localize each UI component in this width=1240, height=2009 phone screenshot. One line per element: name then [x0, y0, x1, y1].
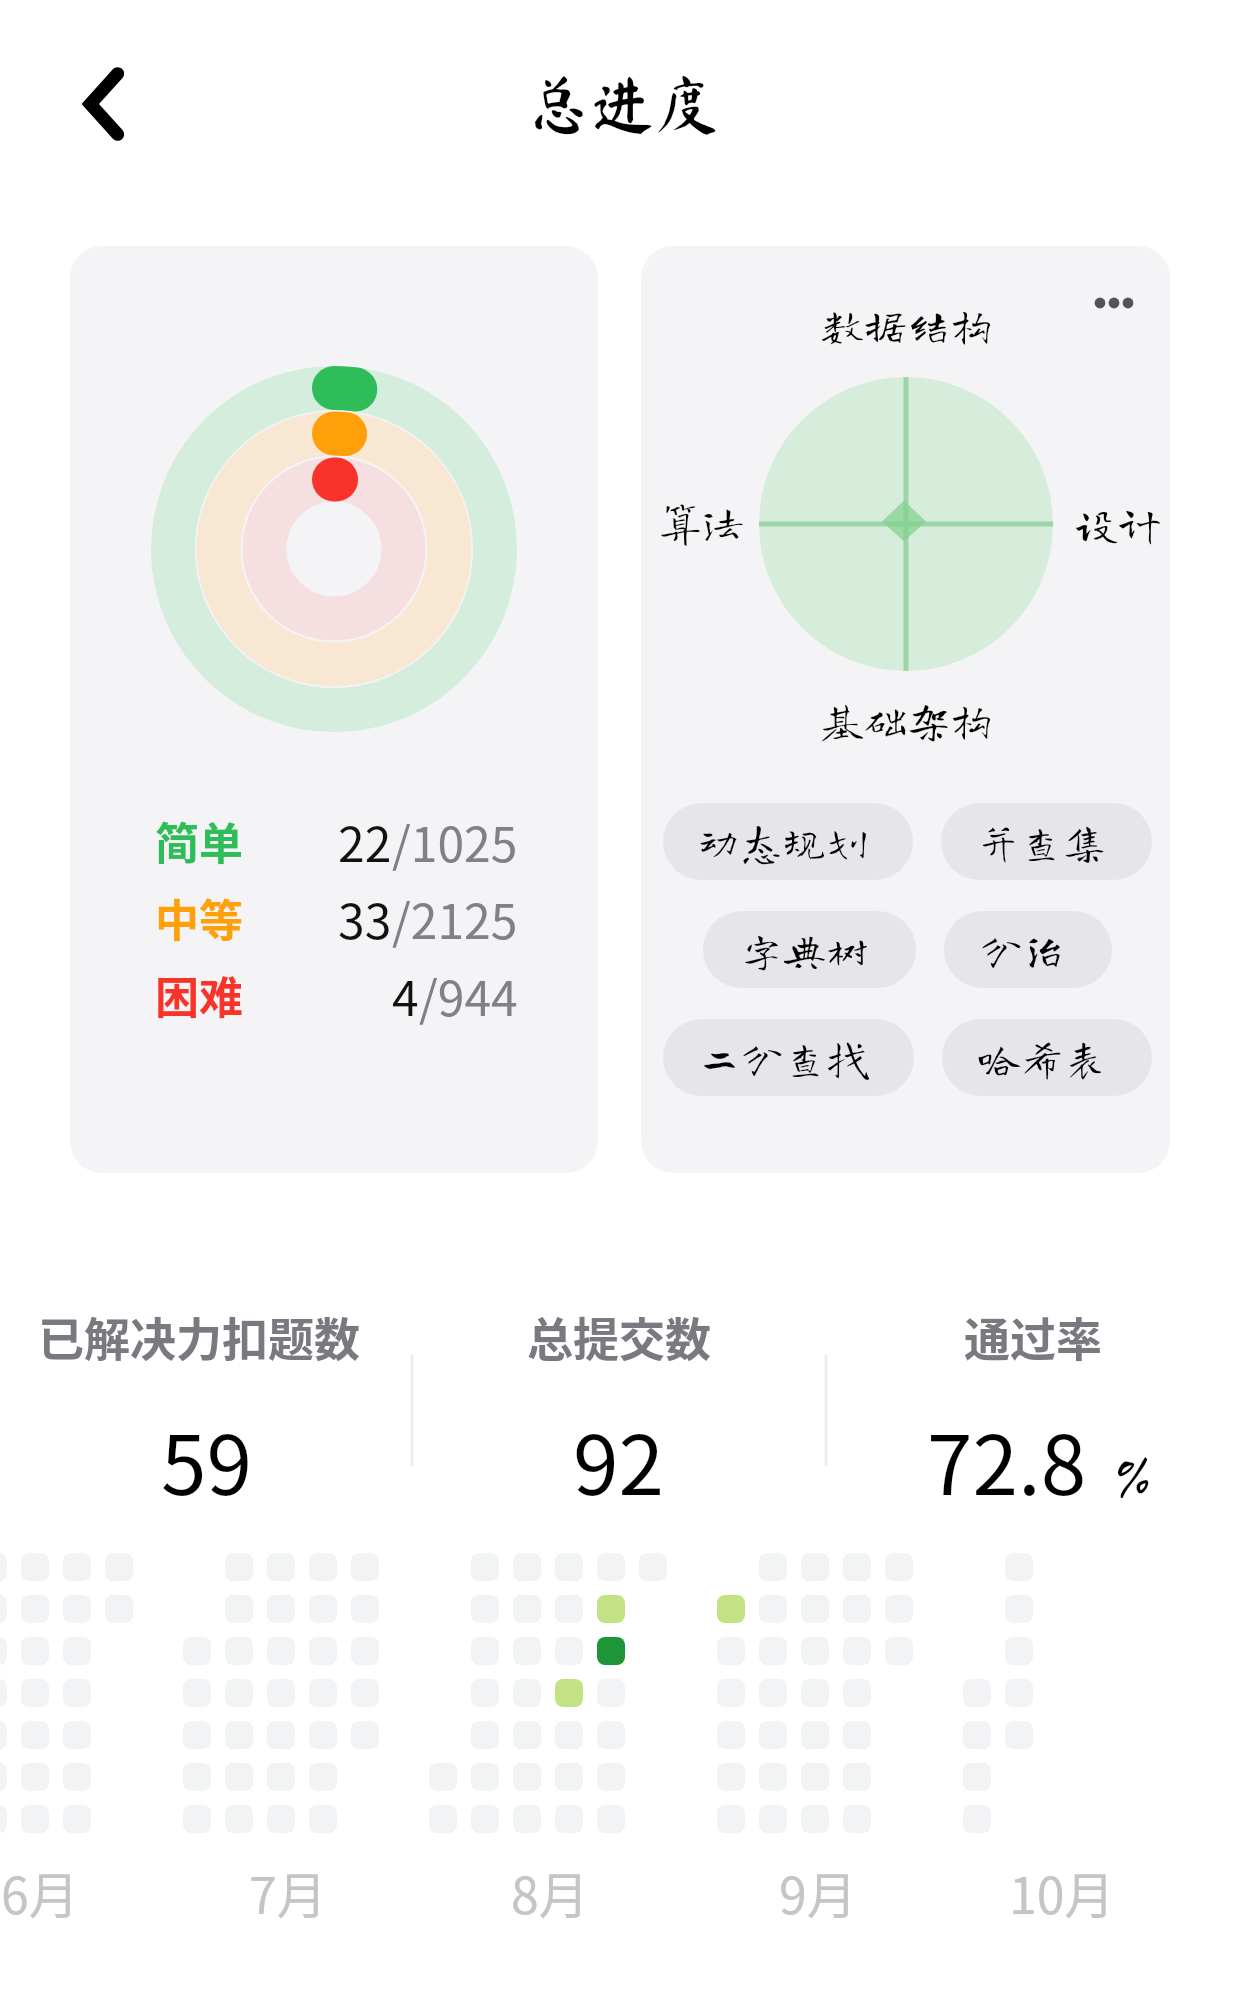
staticText: 22 — [338, 806, 392, 876]
button[interactable]: 通过率 — [826, 1303, 1240, 1513]
button[interactable]: 并查集 — [941, 803, 1152, 880]
staticText: 设计 — [1075, 502, 1161, 545]
staticText: 7月 — [249, 1856, 327, 1928]
staticText: 并查集 — [977, 820, 1128, 863]
staticText: 困难 — [155, 963, 243, 1027]
button[interactable]: 二分查找 — [663, 1019, 914, 1096]
staticText: 8月 — [511, 1856, 589, 1928]
button[interactable]: 已解决力扣题数 — [0, 1303, 405, 1513]
staticText: 哈希表 — [978, 1036, 1129, 1079]
button[interactable]: 哈希表 — [942, 1019, 1152, 1096]
button[interactable]: 总提交数 — [412, 1303, 826, 1513]
staticText: /2125 — [392, 883, 518, 953]
button[interactable]: 简单 — [70, 246, 598, 1173]
staticText: 通过率 — [964, 1303, 1102, 1370]
staticText: 6月 — [1, 1856, 79, 1928]
button[interactable]: 分治 — [944, 911, 1112, 988]
staticText: % — [1114, 1440, 1149, 1512]
staticText: 总进度 — [527, 72, 719, 136]
staticText: 算法 — [659, 500, 745, 543]
staticText: 总提交数 — [527, 1303, 711, 1370]
button[interactable]: More options — [641, 246, 1170, 1173]
staticText: 数据结构 — [821, 303, 993, 346]
button[interactable]: 动态规划 — [663, 803, 913, 880]
staticText: /944 — [419, 960, 518, 1030]
staticText: 已解决力扣题数 — [38, 1303, 360, 1370]
staticText: 9月 — [779, 1856, 857, 1928]
staticText: 10月 — [1009, 1856, 1115, 1928]
staticText: 简单 — [155, 809, 243, 873]
staticText: 动态规划 — [697, 820, 891, 863]
button[interactable]: Back — [58, 58, 150, 150]
staticText: 92 — [573, 1400, 665, 1519]
staticText: 中等 — [155, 886, 243, 950]
staticText: 基础架构 — [821, 698, 993, 741]
staticText: 4 — [392, 960, 419, 1030]
staticText: 字典树 — [740, 928, 891, 971]
button[interactable]: 字典树 — [703, 911, 916, 988]
staticText: /1025 — [392, 806, 518, 876]
button[interactable]: More options — [1077, 266, 1151, 340]
staticText: 分治 — [980, 928, 1088, 971]
staticText: 72.8 — [927, 1400, 1087, 1519]
staticText: 33 — [338, 883, 392, 953]
staticText: 二分查找 — [698, 1036, 892, 1079]
staticText: 59 — [161, 1400, 253, 1519]
